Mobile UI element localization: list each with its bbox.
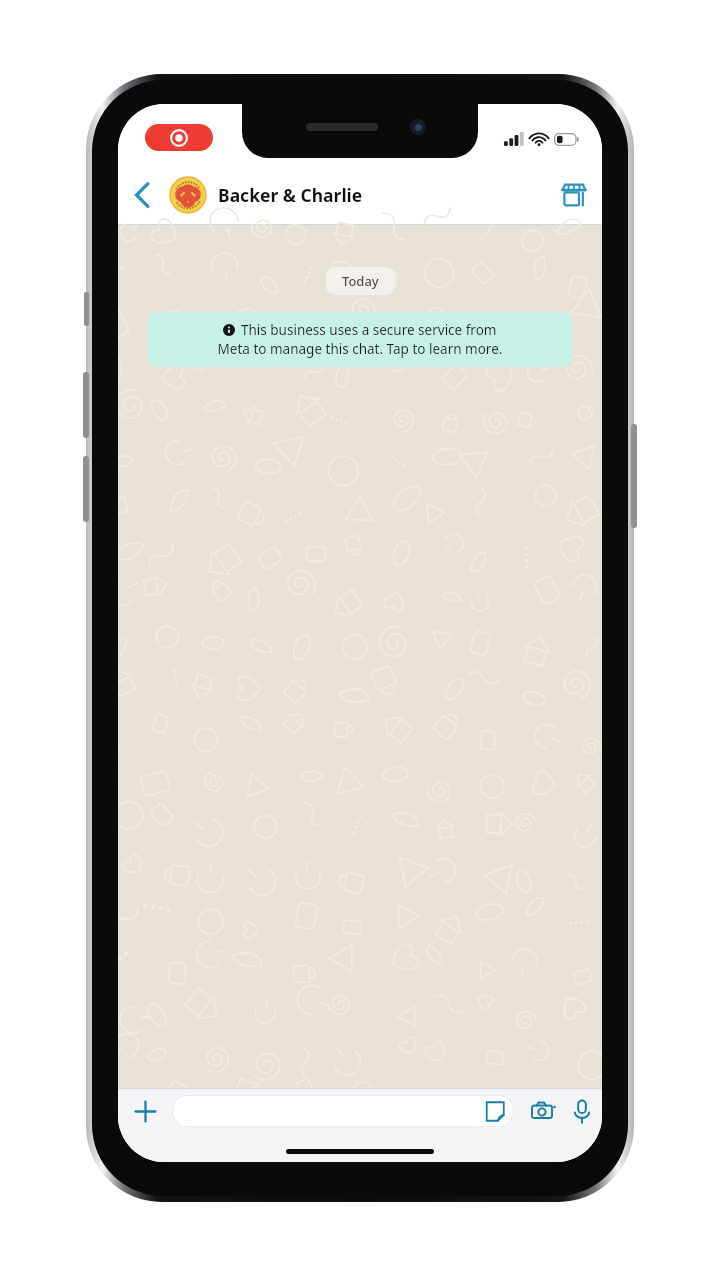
- button[interactable]: Business profile: [546, 165, 602, 225]
- button[interactable]: This business uses a secure service from: [148, 312, 572, 367]
- staticText: Meta to manage this chat. Tap to learn m…: [160, 340, 560, 358]
- button[interactable]: Camera: [524, 1088, 562, 1134]
- button[interactable]: Back: [118, 165, 166, 225]
- button[interactable]: Screen recording: [145, 124, 213, 151]
- button[interactable]: Message: [172, 1095, 514, 1127]
- button[interactable]: Backer & Charlie: [166, 165, 546, 225]
- staticText: Backer & Charlie: [218, 183, 363, 207]
- button[interactable]: Voice message: [562, 1088, 602, 1134]
- staticText: Today: [342, 272, 379, 290]
- staticText: This business uses a secure service from: [241, 321, 497, 339]
- button[interactable]: Today: [326, 267, 395, 295]
- button[interactable]: Attach: [118, 1088, 172, 1134]
